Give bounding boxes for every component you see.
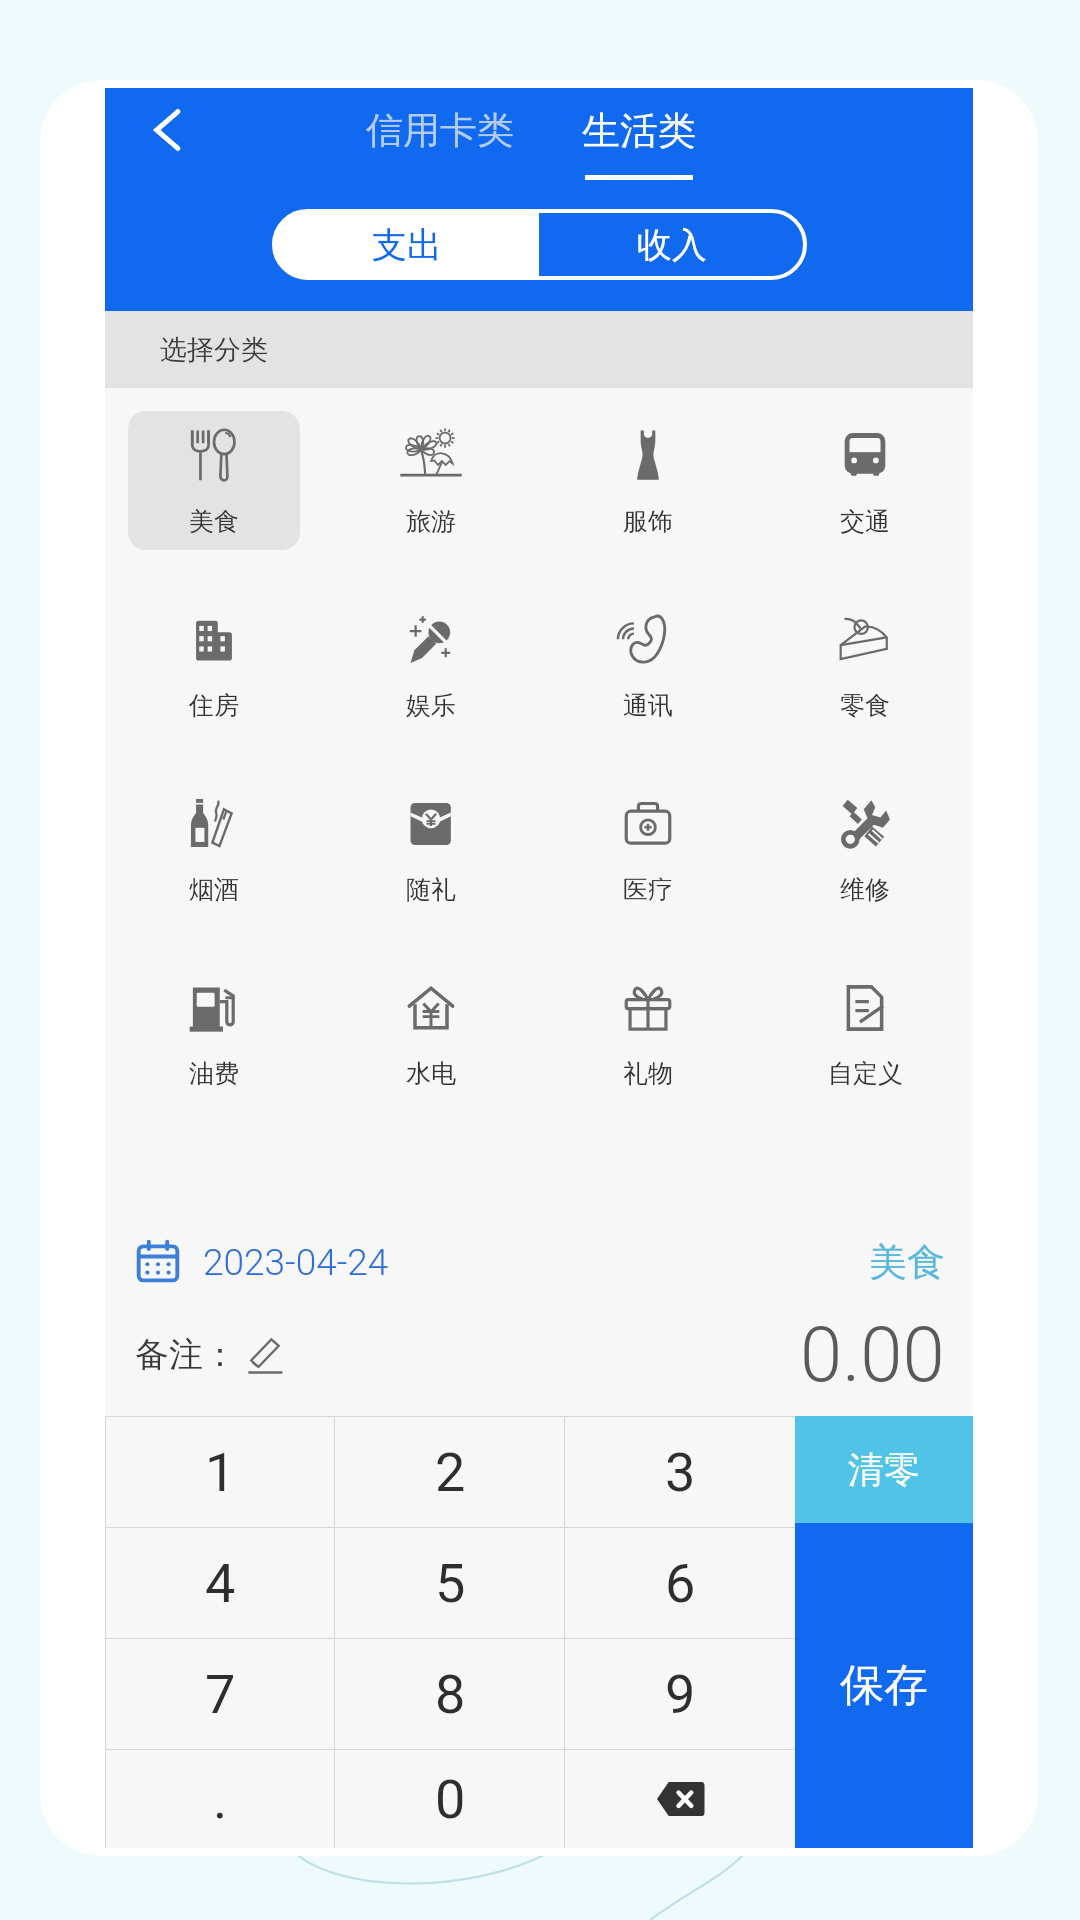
button[interactable]: 烟酒: [128, 779, 300, 918]
button[interactable]: 8: [335, 1639, 565, 1749]
button[interactable]: 6: [565, 1528, 795, 1638]
button[interactable]: 礼物: [562, 963, 734, 1102]
staticText: 交通: [840, 506, 890, 537]
button[interactable]: 2023-04-24: [135, 1239, 389, 1285]
button[interactable]: Delete: [565, 1750, 795, 1848]
button[interactable]: 4: [106, 1528, 335, 1638]
staticText: 7: [205, 1663, 236, 1726]
staticText: 4: [205, 1552, 236, 1615]
button[interactable]: 生活类: [568, 101, 710, 186]
button[interactable]: 5: [335, 1528, 565, 1638]
button[interactable]: 3: [565, 1417, 795, 1527]
staticText: 选择分类: [160, 333, 268, 367]
staticText: 零食: [840, 690, 890, 721]
staticText: 0.00: [800, 1310, 945, 1399]
button[interactable]: 支出: [274, 211, 539, 278]
staticText: 2023-04-24: [203, 1241, 389, 1284]
other: Delete: [656, 1780, 705, 1818]
button[interactable]: 交通: [779, 411, 951, 550]
staticText: 2: [435, 1441, 466, 1504]
button[interactable]: 医疗: [562, 779, 734, 918]
staticText: 保存: [840, 1658, 928, 1713]
button[interactable]: 2: [335, 1417, 565, 1527]
staticText: 支出: [372, 223, 442, 267]
staticText: 住房: [189, 690, 239, 721]
staticText: .: [213, 1768, 228, 1831]
button[interactable]: 油费: [128, 963, 300, 1102]
button[interactable]: 0: [335, 1750, 565, 1848]
staticText: 信用卡类: [366, 107, 514, 154]
button[interactable]: Back: [117, 88, 217, 172]
button[interactable]: .: [106, 1750, 335, 1848]
staticText: 1: [205, 1441, 236, 1504]
button[interactable]: 9: [565, 1639, 795, 1749]
staticText: 医疗: [623, 874, 673, 905]
staticText: 娱乐: [406, 690, 456, 721]
button[interactable]: 水电: [345, 963, 517, 1102]
staticText: 旅游: [406, 506, 456, 537]
staticText: 0: [435, 1768, 466, 1831]
button[interactable]: 美食: [128, 411, 300, 550]
staticText: 9: [665, 1663, 696, 1726]
staticText: 生活类: [582, 107, 696, 155]
staticText: 收入: [637, 223, 707, 267]
staticText: 礼物: [623, 1058, 673, 1089]
staticText: 通讯: [623, 690, 673, 721]
staticText: 自定义: [828, 1058, 903, 1089]
staticText: 8: [435, 1663, 466, 1726]
staticText: 6: [665, 1552, 696, 1615]
staticText: 服饰: [623, 506, 673, 537]
staticText: 油费: [189, 1058, 239, 1089]
button[interactable]: 7: [106, 1639, 335, 1749]
staticText: 备注：: [135, 1333, 237, 1376]
button[interactable]: 住房: [128, 595, 300, 734]
button[interactable]: 通讯: [562, 595, 734, 734]
staticText: 水电: [406, 1058, 456, 1089]
button[interactable]: 娱乐: [345, 595, 517, 734]
button[interactable]: 随礼: [345, 779, 517, 918]
staticText: 美食: [189, 506, 239, 537]
button[interactable]: 清零: [795, 1416, 973, 1523]
button[interactable]: 自定义: [779, 963, 951, 1102]
staticText: 烟酒: [189, 874, 239, 905]
button[interactable]: 旅游: [345, 411, 517, 550]
button[interactable]: 服饰: [562, 411, 734, 550]
staticText: 随礼: [406, 874, 456, 905]
button[interactable]: 信用卡类: [352, 101, 528, 160]
staticText: 美食: [869, 1238, 945, 1286]
button[interactable]: 1: [106, 1417, 335, 1527]
button[interactable]: 保存: [795, 1523, 973, 1848]
button[interactable]: 收入: [539, 211, 805, 278]
staticText: 清零: [848, 1447, 920, 1492]
staticText: 5: [435, 1552, 466, 1615]
button[interactable]: 维修: [779, 779, 951, 918]
button[interactable]: Edit note: [241, 1332, 287, 1378]
staticText: 维修: [840, 874, 890, 905]
staticText: 3: [665, 1441, 696, 1504]
button[interactable]: 零食: [779, 595, 951, 734]
